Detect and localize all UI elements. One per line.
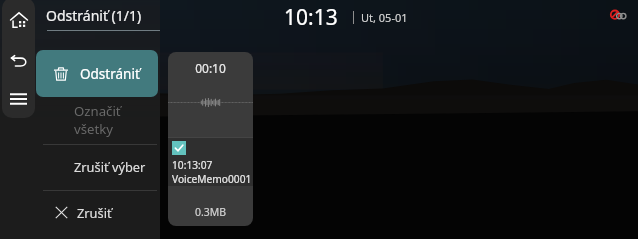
staticText: Odstrániť — [80, 65, 140, 83]
staticText: VoiceMemo0001 — [172, 172, 252, 186]
button[interactable]: Menu — [2, 80, 35, 118]
button[interactable]: 10:13:07 — [168, 138, 253, 186]
staticText: 10:13 — [284, 3, 338, 32]
button[interactable]: Home — [2, 0, 35, 42]
button[interactable]: Označiť všetky — [36, 99, 160, 141]
staticText: Zrušiť výber — [74, 158, 146, 175]
staticText: 00:10 — [168, 60, 253, 76]
staticText: Označiť všetky — [74, 102, 121, 138]
button[interactable]: Recording disabled — [608, 5, 628, 25]
button[interactable]: Odstrániť — [36, 50, 158, 97]
button[interactable]: Zrušiť výber — [36, 150, 160, 182]
staticText: Ut, 05-01 — [361, 10, 408, 25]
button[interactable]: Back — [2, 42, 35, 80]
staticText: Zrušiť — [77, 204, 112, 221]
staticText: Odstrániť (1/1) — [46, 6, 142, 25]
button[interactable]: Zrušiť — [36, 196, 160, 228]
staticText: 10:13:07 — [172, 158, 213, 172]
staticText: 0.3MB — [168, 205, 253, 219]
